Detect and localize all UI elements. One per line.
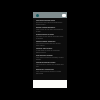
staticText: Your subscription expires in three days …	[36, 70, 64, 74]
staticText: Weekly digest summary	[36, 40, 56, 42]
staticText: Your flight schedule changed, review det…	[36, 56, 64, 60]
staticText: The quarterly report was shared with you	[36, 63, 64, 67]
staticText: Reminder: renew plan	[36, 68, 54, 70]
button[interactable]: Morning standup notes	[33, 19, 67, 25]
button[interactable]: Menu	[62, 14, 66, 17]
button[interactable]: Shared document ready	[33, 61, 67, 67]
staticText: Security alert notice	[36, 47, 53, 49]
button[interactable]: Design review feedback	[33, 26, 67, 32]
staticText: Shared document ready	[36, 61, 56, 63]
staticText: Payment is due within fourteen days of r…	[36, 35, 64, 39]
staticText: Trip itinerary update	[36, 54, 53, 56]
button[interactable]: Weekly digest summary	[33, 40, 67, 46]
staticText: A new sign-in from an unknown device fou…	[36, 49, 64, 53]
staticText: Top stories picked for you across your t…	[36, 42, 64, 46]
staticText: Design review feedback	[36, 26, 56, 28]
button[interactable]: Invoice #2049 is ready	[33, 33, 67, 39]
button[interactable]: Reminder: renew plan	[33, 68, 67, 74]
staticText: Morning standup notes	[36, 19, 55, 21]
button[interactable]: Security alert notice	[33, 47, 67, 53]
staticText: Invoice #2049 is ready	[36, 33, 54, 35]
staticText: Discussed the roadmap milestones and blo…	[36, 21, 64, 25]
button[interactable]: Trip itinerary update	[33, 54, 67, 60]
staticText: Take a look at the latest mockups by Fri…	[36, 28, 64, 32]
button[interactable]: Account	[36, 14, 39, 17]
